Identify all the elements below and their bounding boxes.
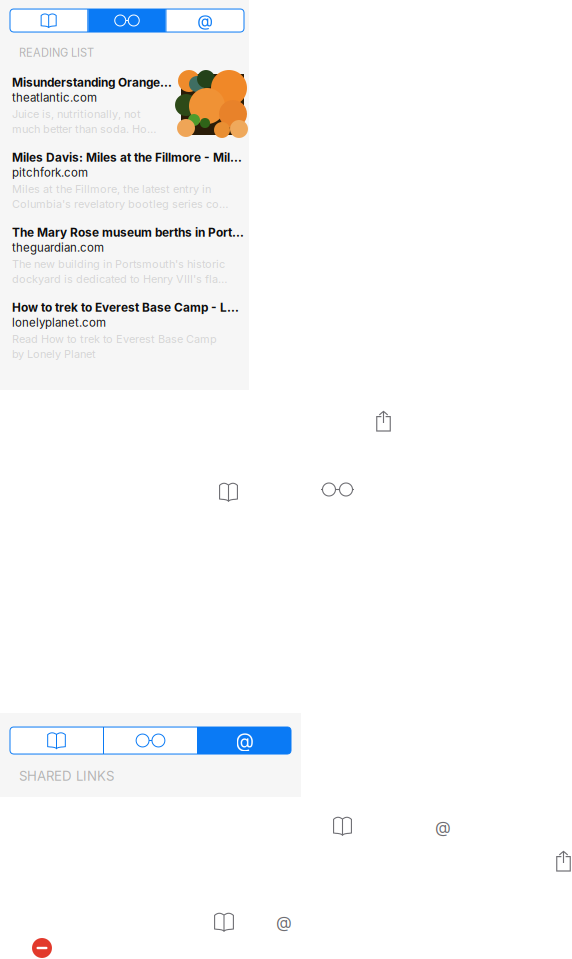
button[interactable]: Bookmarks xyxy=(10,9,87,32)
staticText: pitchfork.com xyxy=(12,166,88,179)
staticText: The Mary Rose museum berths in Port… xyxy=(12,225,244,240)
button[interactable]: Reading List xyxy=(104,727,197,754)
staticText: dockyard is dedicated to Henry VIII's fl… xyxy=(12,272,227,286)
staticText: @ xyxy=(197,11,213,30)
staticText: @ xyxy=(276,912,292,932)
button[interactable]: Bookmarks xyxy=(333,817,352,835)
button[interactable]: The Mary Rose museum berths in Port… xyxy=(12,224,244,288)
staticText: much better than soda. Ho… xyxy=(12,122,156,136)
staticText: Misunderstanding Orange… xyxy=(12,75,172,90)
button[interactable]: Reading List xyxy=(88,9,166,32)
staticText: @ xyxy=(435,817,451,837)
button[interactable]: Misunderstanding Orange… xyxy=(12,74,244,138)
staticText: How to trek to Everest Base Camp - L… xyxy=(12,300,239,315)
staticText: READING LIST xyxy=(19,46,94,59)
button[interactable]: Bookmarks xyxy=(219,483,238,501)
staticText: The new building in Portsmouth's histori… xyxy=(12,257,225,271)
button[interactable]: Share xyxy=(556,851,571,871)
staticText: SHARED LINKS xyxy=(19,768,114,784)
button[interactable]: Delete xyxy=(32,938,52,958)
button[interactable]: Bookmarks xyxy=(10,727,103,754)
button[interactable]: Shared Links xyxy=(276,914,292,930)
button[interactable]: Shared Links xyxy=(167,9,244,32)
button[interactable]: Shared Links xyxy=(198,727,291,754)
staticText: lonelyplanet.com xyxy=(12,316,106,329)
staticText: Read How to trek to Everest Base Camp xyxy=(12,332,217,346)
staticText: Columbia's revelatory bootleg series co… xyxy=(12,197,228,211)
button[interactable]: Bookmarks xyxy=(214,913,234,931)
staticText: Miles Davis: Miles at the Fillmore - Mil… xyxy=(12,150,242,165)
button[interactable]: Shared Links xyxy=(435,819,451,835)
staticText: theatlantic.com xyxy=(12,91,97,104)
staticText: Miles at the Fillmore, the latest entry … xyxy=(12,182,211,196)
button[interactable]: Reading List xyxy=(321,483,354,496)
staticText: theguardian.com xyxy=(12,241,104,254)
button[interactable]: Miles Davis: Miles at the Fillmore - Mil… xyxy=(12,149,244,213)
button[interactable]: Share xyxy=(376,411,391,431)
button[interactable]: How to trek to Everest Base Camp - L… xyxy=(12,299,244,363)
staticText: @ xyxy=(235,729,253,752)
staticText: by Lonely Planet xyxy=(12,347,96,361)
staticText: Juice is, nutritionally, not xyxy=(12,107,141,121)
